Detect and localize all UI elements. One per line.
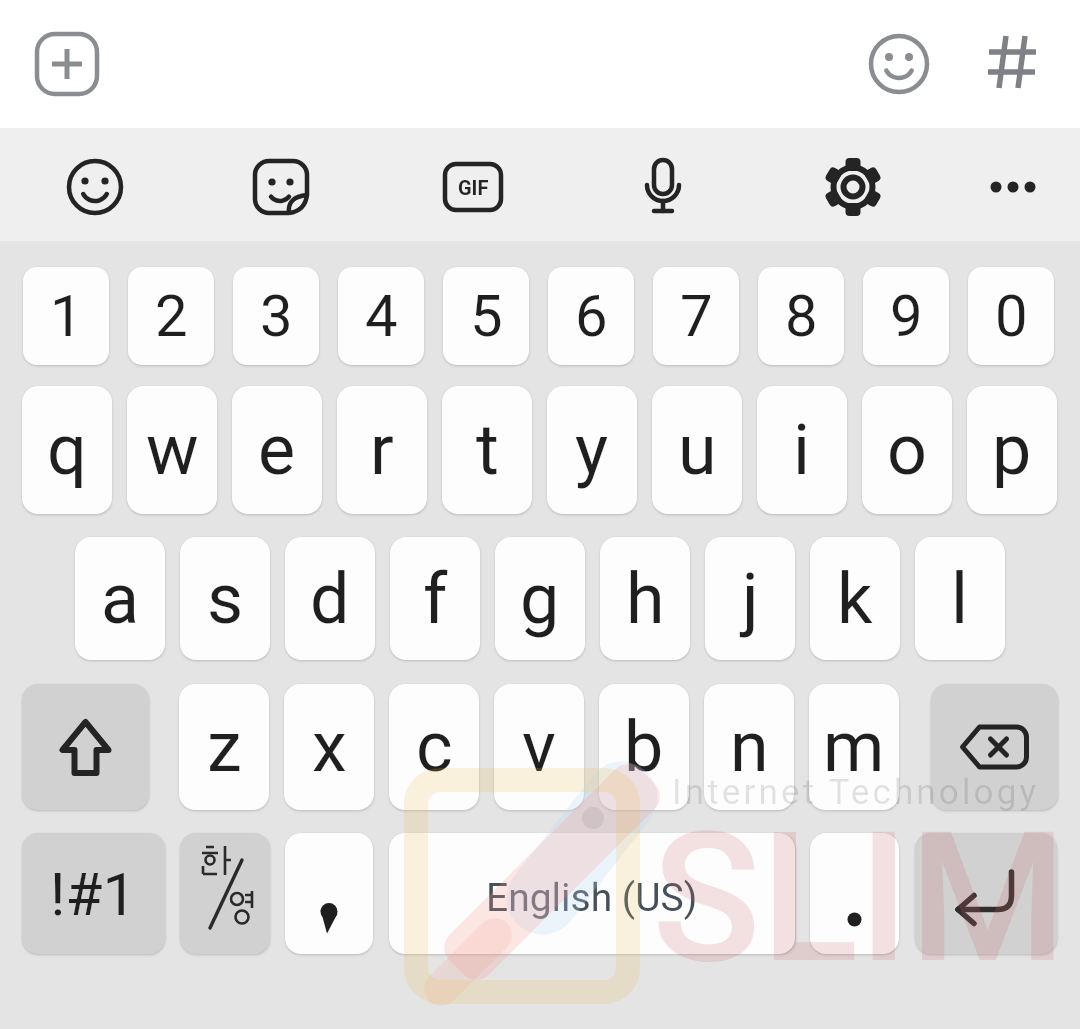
staticText: c [416,706,453,788]
button[interactable]: l [915,537,1005,660]
staticText: n [730,706,769,788]
button[interactable]: a [75,537,165,660]
button[interactable]: j [705,537,795,660]
button[interactable] [816,150,890,224]
staticText: w [146,409,199,491]
button[interactable]: GIF [436,150,510,224]
staticText: p [992,409,1032,491]
button[interactable]: 6 [548,267,634,365]
button[interactable]: f [390,537,480,660]
staticText: q [47,409,87,491]
button[interactable]: u [652,386,742,514]
button[interactable]: 3 [233,267,319,365]
button[interactable]: 0 [968,267,1054,365]
staticText: 9 [890,282,923,350]
button[interactable]: t [442,386,532,514]
staticText: 1 [50,282,83,350]
staticText: o [887,409,927,491]
staticText: 3 [260,282,293,350]
button[interactable]: !#1 [22,833,165,954]
button[interactable]: n [704,684,794,810]
button[interactable]: v [494,684,584,810]
staticText: j [742,558,759,640]
button[interactable]: r [337,386,427,514]
staticText: z [207,706,242,788]
button[interactable]: p [967,386,1057,514]
staticText: 7 [680,282,713,350]
button[interactable] [975,25,1049,99]
button[interactable]: q [22,386,112,514]
button[interactable] [285,833,373,954]
staticText: GIF [458,176,489,199]
staticText: Internet Technology [672,772,1040,813]
button[interactable]: 4 [338,267,424,365]
button[interactable]: w [127,386,217,514]
staticText: k [837,558,873,640]
button[interactable] [810,833,899,954]
staticText: 6 [575,282,608,350]
button[interactable]: g [495,537,585,660]
staticText: i [793,409,811,491]
button[interactable]: 8 [758,267,844,365]
button[interactable] [915,833,1057,954]
staticText: d [310,558,350,640]
button[interactable]: c [389,684,479,810]
button[interactable]: y [547,386,637,514]
staticText: f [423,558,448,640]
button[interactable]: 5 [443,267,529,365]
button[interactable]: English (US) [389,833,795,954]
staticText: 5 [470,282,503,350]
button[interactable] [22,684,149,810]
staticText: b [624,706,664,788]
staticText: s [207,558,244,640]
button[interactable] [976,150,1050,224]
button[interactable]: i [757,386,847,514]
button[interactable]: 7 [653,267,739,365]
staticText: g [520,558,560,640]
button[interactable]: 1 [23,267,109,365]
staticText: y [575,409,609,491]
button[interactable]: d [285,537,375,660]
staticText: 4 [365,282,398,350]
staticText: SLIM [652,793,1067,1004]
staticText: u [678,409,717,491]
staticText: 8 [785,282,818,350]
button[interactable]: e [232,386,322,514]
button[interactable]: s [180,537,270,660]
button[interactable] [30,27,104,101]
button[interactable]: 9 [863,267,949,365]
button[interactable] [180,833,270,954]
staticText: x [312,706,347,788]
staticText: 2 [155,282,188,350]
staticText: e [258,409,296,491]
staticText: m [823,706,885,788]
button[interactable] [58,150,132,224]
button[interactable] [862,27,936,101]
button[interactable] [244,150,318,224]
button[interactable]: k [810,537,900,660]
staticText: v [522,706,556,788]
staticText: h [626,558,665,640]
button[interactable]: x [284,684,374,810]
staticText: l [951,558,969,640]
button[interactable] [626,150,700,224]
staticText: English (US) [486,875,698,921]
staticText: t [476,409,499,491]
button[interactable]: z [179,684,269,810]
staticText: r [370,409,394,491]
button[interactable]: b [599,684,689,810]
staticText: !#1 [50,859,137,929]
staticText: 0 [995,282,1028,350]
button[interactable]: h [600,537,690,660]
button[interactable] [931,684,1058,810]
button[interactable]: m [809,684,899,810]
button[interactable]: o [862,386,952,514]
staticText: a [101,558,140,640]
button[interactable]: 2 [128,267,214,365]
